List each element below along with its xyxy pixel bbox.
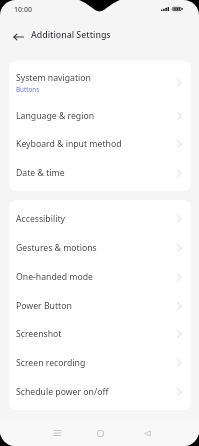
staticText: Additional Settings [31,29,111,41]
staticText: Power Button [16,300,72,312]
button[interactable]: Power Button [9,291,191,320]
button[interactable]: Back [6,25,30,49]
staticText: Screen recording [16,357,86,369]
button[interactable]: Screenshot [9,319,191,348]
staticText: Keyboard & input method [16,138,122,150]
staticText: Accessibility [16,213,65,225]
button[interactable]: Keyboard & input method [9,129,191,158]
button[interactable]: Back [135,420,160,446]
button[interactable]: Gestures & motions [9,233,191,262]
button[interactable]: Schedule power on/off [9,377,191,406]
button[interactable]: Language & region [9,101,191,130]
staticText: 10:00 [14,5,32,15]
staticText: Language & region [16,110,95,122]
button[interactable]: Date & time [9,158,191,187]
staticText: Date & time [16,167,65,179]
button[interactable]: One-handed mode [9,262,191,291]
staticText: Gestures & motions [16,242,97,254]
button[interactable]: Home [88,420,113,446]
staticText: Schedule power on/off [16,386,109,398]
staticText: Screenshot [16,328,62,340]
staticText: One-handed mode [16,271,93,283]
staticText: Buttons [16,85,40,94]
button[interactable]: System navigation [9,65,191,101]
button[interactable]: Recent apps [45,420,70,446]
staticText: System navigation [16,72,91,84]
button[interactable]: Screen recording [9,348,191,377]
button[interactable]: Accessibility [9,204,191,233]
